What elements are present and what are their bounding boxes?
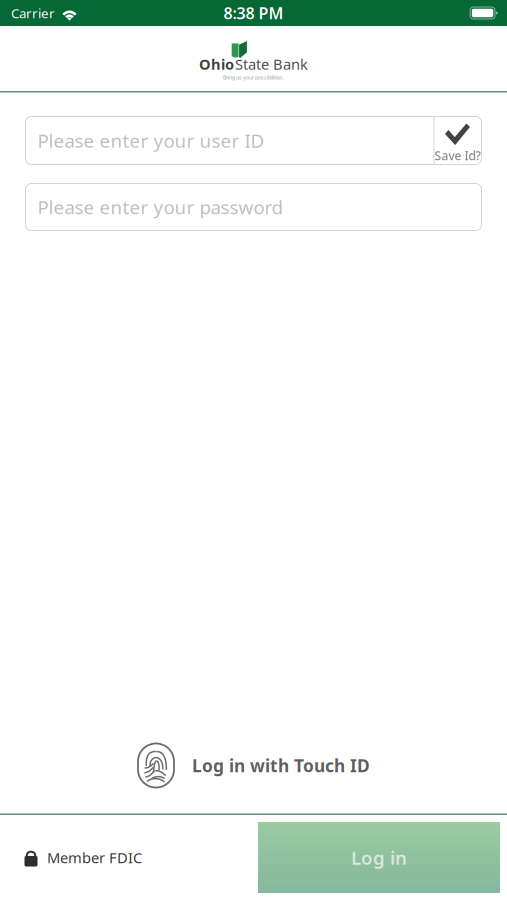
staticText: Bring us your possibilities. [223,74,284,81]
staticText: Log in [351,845,407,870]
staticText: Please enter your password [37,195,282,219]
staticText: 8:38 PM [223,2,283,24]
staticText: Log in with Touch ID [192,754,370,777]
button[interactable]: Save Id? [433,116,481,164]
staticText: Save Id? [434,147,480,163]
staticText: Ohio [199,54,234,74]
staticText: Please enter your user ID [37,128,264,153]
button[interactable]: Log in [258,822,500,893]
staticText: Carrier [11,4,55,22]
staticText: Member FDIC [47,848,142,867]
staticText: State Bank [235,54,308,74]
button[interactable]: Log in with Touch ID [0,736,507,794]
